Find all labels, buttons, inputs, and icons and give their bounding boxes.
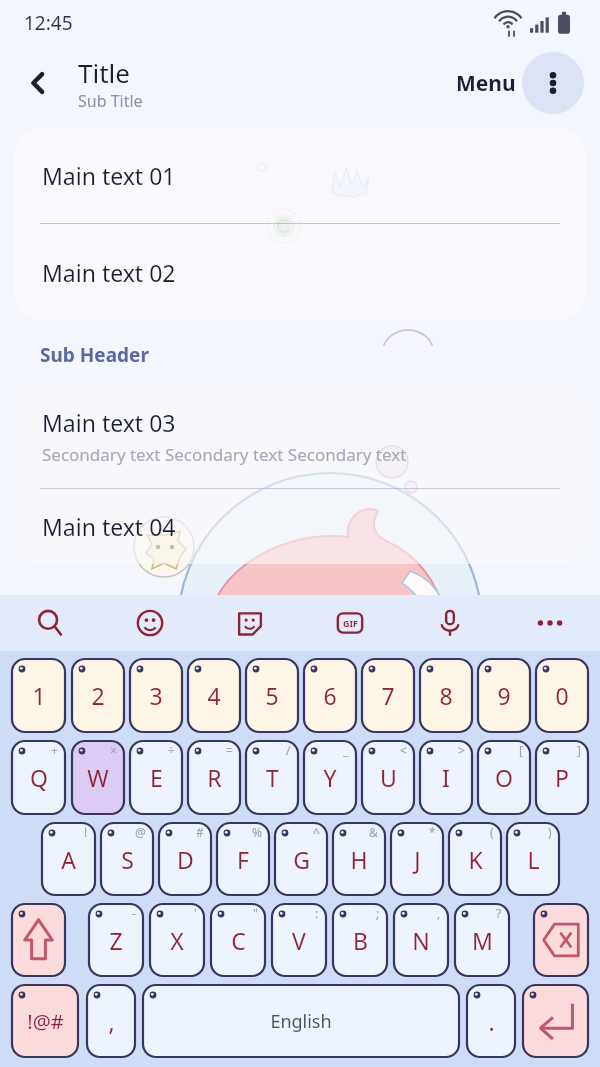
button[interactable]: Main text 03 <box>14 384 586 488</box>
button[interactable]: _ <box>304 741 356 814</box>
staticText: B <box>353 925 368 956</box>
staticText: = <box>226 742 233 758</box>
button[interactable]: ^ <box>275 823 327 895</box>
button[interactable]: * <box>391 823 443 895</box>
button[interactable]: More options <box>522 52 584 114</box>
staticText: % <box>252 824 262 840</box>
button[interactable]: 8 <box>420 659 472 732</box>
staticText: GIF <box>343 617 358 629</box>
button[interactable]: ' <box>150 904 204 976</box>
staticText: . <box>488 1006 495 1037</box>
staticText: G <box>293 844 310 875</box>
staticText: N <box>412 925 430 956</box>
button[interactable]: 5 <box>246 659 298 732</box>
staticText: ÷ <box>168 742 175 758</box>
button[interactable]: ] <box>536 741 588 814</box>
button[interactable]: 6 <box>304 659 356 732</box>
staticText: 1 <box>32 680 46 711</box>
staticText: Main text 04 <box>42 511 176 542</box>
staticText: R <box>207 762 222 793</box>
button[interactable]: !@# <box>12 985 78 1057</box>
button[interactable]: = <box>188 741 240 814</box>
button[interactable]: > <box>420 741 472 814</box>
button[interactable]: 0 <box>536 659 588 732</box>
button[interactable]: Search <box>26 599 74 647</box>
staticText: Y <box>323 762 337 793</box>
staticText: Sub Title <box>78 90 143 112</box>
button[interactable]: 7 <box>362 659 414 732</box>
button[interactable]: More options <box>526 599 574 647</box>
staticText: W <box>87 762 109 793</box>
button[interactable]: : <box>272 904 326 976</box>
button[interactable]: % <box>217 823 269 895</box>
staticText: ; <box>376 905 380 921</box>
button[interactable]: 3 <box>130 659 182 732</box>
staticText: D <box>177 844 194 875</box>
button[interactable]: English <box>143 985 459 1057</box>
staticText: T <box>266 762 279 793</box>
staticText: , <box>108 1006 115 1037</box>
button[interactable]: Menu <box>452 69 520 98</box>
button[interactable]: / <box>246 741 298 814</box>
button[interactable]: . <box>467 985 515 1057</box>
button[interactable]: - <box>89 904 143 976</box>
button[interactable]: Main text 04 <box>14 489 586 564</box>
button[interactable]: & <box>333 823 385 895</box>
staticText: × <box>110 742 117 758</box>
staticText: * <box>429 824 436 840</box>
staticText: Q <box>30 762 48 793</box>
button[interactable]: Main text 01 <box>14 128 586 223</box>
staticText: 4 <box>207 680 221 711</box>
staticText: / <box>286 742 291 758</box>
button[interactable]: Shift <box>12 904 65 976</box>
button[interactable]: [ <box>478 741 530 814</box>
staticText: + <box>51 742 58 758</box>
staticText: K <box>468 844 483 875</box>
staticText: ? <box>496 905 502 921</box>
staticText: C <box>231 925 246 956</box>
button[interactable]: 9 <box>478 659 530 732</box>
staticText: U <box>380 762 397 793</box>
button[interactable]: , <box>87 985 135 1057</box>
button[interactable]: Back <box>12 57 64 109</box>
button[interactable]: ; <box>333 904 387 976</box>
staticText: 7 <box>381 680 395 711</box>
button[interactable]: < <box>362 741 414 814</box>
button[interactable]: # <box>159 823 211 895</box>
staticText: H <box>350 844 368 875</box>
button[interactable]: ÷ <box>130 741 182 814</box>
staticText: ] <box>577 742 581 758</box>
button[interactable]: Stickers <box>226 599 274 647</box>
button[interactable]: ! <box>42 823 95 895</box>
staticText: ) <box>548 824 552 840</box>
button[interactable]: ) <box>507 823 559 895</box>
button[interactable]: 1 <box>12 659 65 732</box>
button[interactable]: @ <box>101 823 153 895</box>
button[interactable]: Main text 02 <box>14 224 586 320</box>
staticText: _ <box>343 742 349 758</box>
staticText: Main text 03 <box>42 407 176 438</box>
staticText: O <box>495 762 513 793</box>
button[interactable]: , <box>394 904 448 976</box>
staticText: > <box>458 742 465 758</box>
button[interactable]: + <box>12 741 65 814</box>
button[interactable]: Emoji <box>126 599 174 647</box>
staticText: ^ <box>313 824 320 840</box>
button[interactable]: Voice input <box>426 599 474 647</box>
button[interactable]: ? <box>455 904 509 976</box>
staticText: 6 <box>323 680 337 711</box>
staticText: 2 <box>91 680 105 711</box>
button[interactable]: 4 <box>188 659 240 732</box>
button[interactable]: Backspace <box>534 904 588 976</box>
button[interactable]: × <box>72 741 124 814</box>
button[interactable]: ( <box>449 823 501 895</box>
staticText: " <box>253 905 258 921</box>
button[interactable]: GIF <box>326 599 374 647</box>
button[interactable]: Enter <box>523 985 588 1057</box>
staticText: Sub Header <box>40 342 149 368</box>
staticText: ( <box>490 824 494 840</box>
staticText: [ <box>519 742 523 758</box>
button[interactable]: " <box>211 904 265 976</box>
button[interactable]: 2 <box>72 659 124 732</box>
staticText: 0 <box>555 680 569 711</box>
